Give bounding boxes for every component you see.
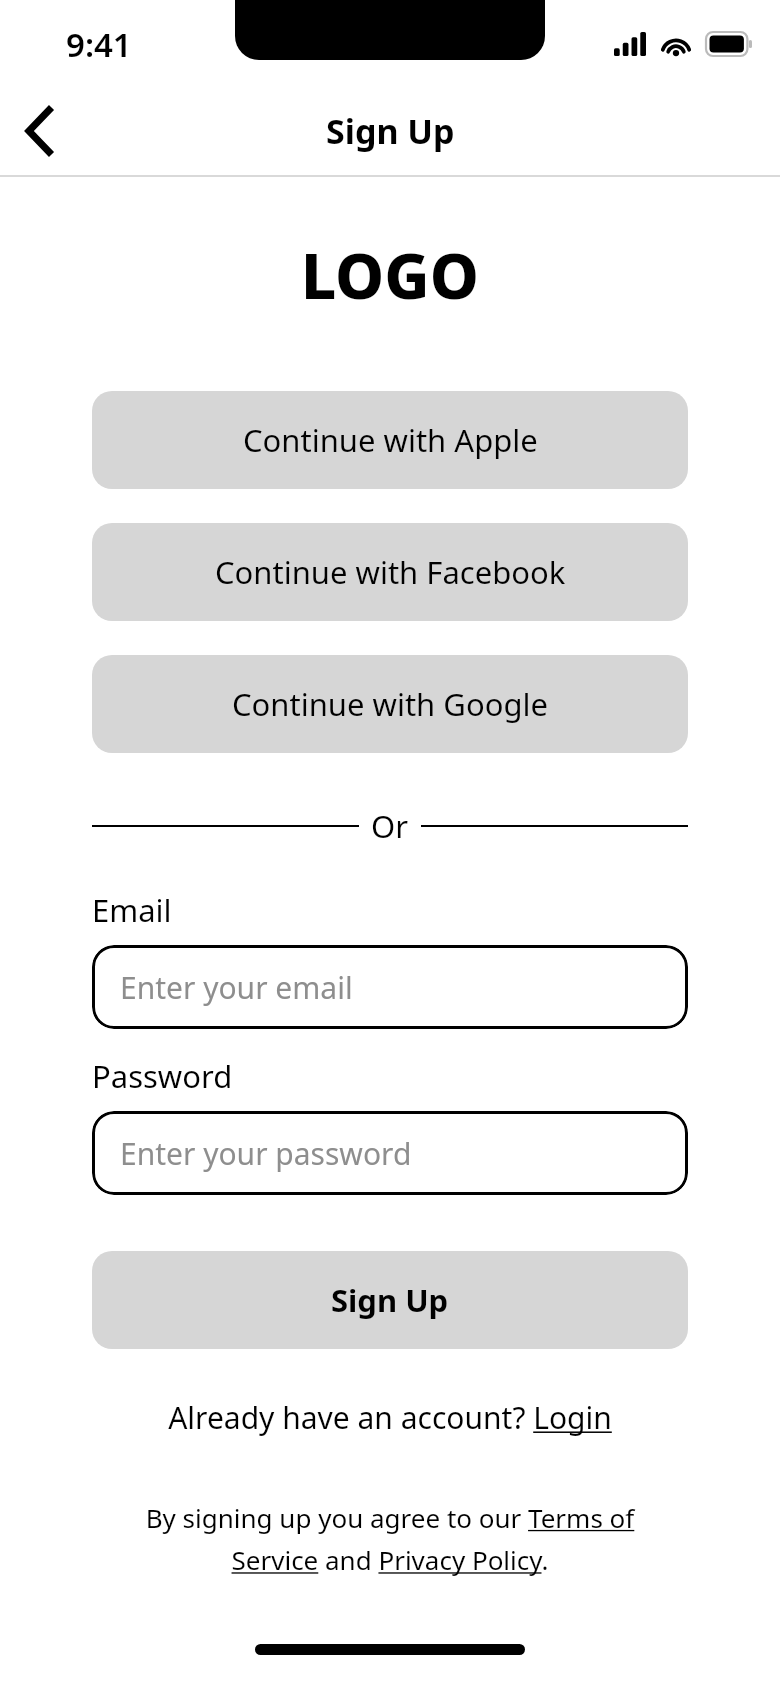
button[interactable]: Back	[10, 102, 68, 160]
button[interactable]: Enter your email	[92, 945, 688, 1029]
staticText: Continue with Apple	[243, 419, 538, 461]
staticText: Already have an account? Login	[168, 1397, 612, 1438]
staticText: 9:41	[66, 22, 132, 67]
staticText: LOGO	[301, 233, 479, 317]
staticText: Sign Up	[331, 1279, 449, 1321]
staticText: Continue with Google	[232, 683, 548, 725]
button[interactable]: Continue with Facebook	[92, 523, 688, 621]
button[interactable]: Sign Up	[92, 1251, 688, 1349]
staticText: Password	[92, 1055, 233, 1097]
staticText: Email	[92, 889, 172, 931]
button[interactable]: Continue with Apple	[92, 391, 688, 489]
button[interactable]: Continue with Google	[92, 655, 688, 753]
button[interactable]: Enter your password	[92, 1111, 688, 1195]
staticText: Continue with Facebook	[215, 551, 566, 593]
staticText: Enter your email	[120, 967, 353, 1008]
button[interactable]: By signing up you agree to our Terms of …	[106, 1500, 674, 1578]
staticText: Or	[371, 805, 409, 847]
staticText: By signing up you agree to our Terms of …	[106, 1500, 674, 1578]
staticText: Sign Up	[326, 108, 455, 154]
button[interactable]: Already have an account? Login	[92, 1397, 688, 1438]
staticText: Enter your password	[120, 1133, 412, 1174]
